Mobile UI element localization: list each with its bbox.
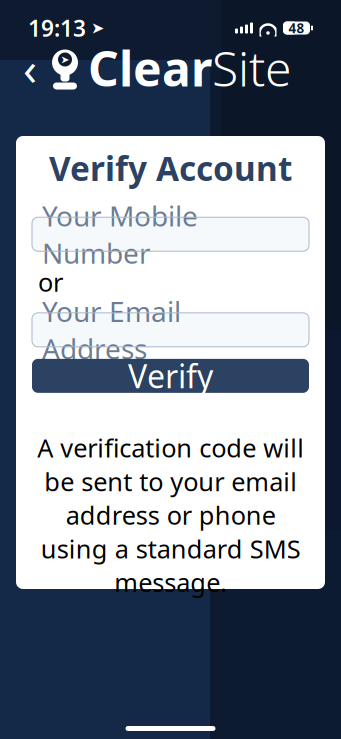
staticText: Your Email Address [42, 293, 181, 367]
staticText: or [38, 265, 63, 299]
staticText: Verify Account [49, 146, 292, 190]
staticText: ‹ [23, 38, 37, 98]
staticText: Clear [88, 36, 212, 100]
staticText: 19:13 [28, 13, 86, 43]
staticText: Site [212, 36, 291, 100]
staticText: 48 [288, 19, 304, 37]
staticText: Verify [128, 355, 213, 397]
staticText: A verification code will be sent to your… [37, 431, 304, 599]
button[interactable]: Your Mobile Number [32, 217, 309, 251]
button[interactable]: Your Email Address [32, 313, 309, 347]
staticText: Your Mobile Number [42, 197, 198, 271]
staticText: ➤ [60, 53, 69, 65]
staticText: ➤ [91, 19, 104, 37]
button[interactable]: Verify [32, 359, 309, 393]
button[interactable]: Back [8, 46, 52, 90]
